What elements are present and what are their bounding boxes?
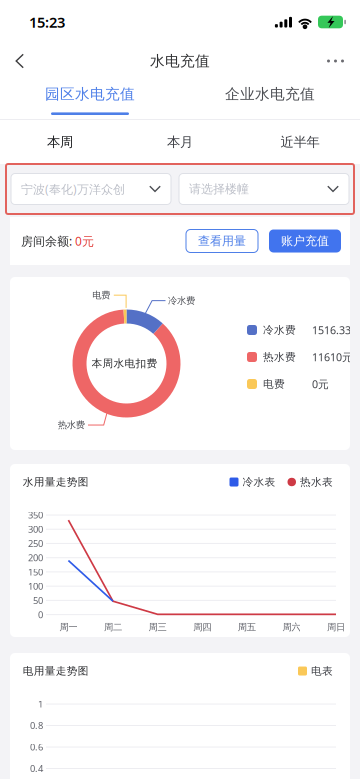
staticText: 账户充值 (281, 234, 329, 248)
staticText: 冷水费 (263, 323, 296, 336)
staticText: 宁波(奉化)万洋众创 (21, 181, 125, 197)
staticText: 50 (33, 594, 43, 607)
button[interactable]: 本月 (120, 120, 240, 164)
staticText: 水电充值 (150, 52, 210, 70)
staticText: 1 (38, 698, 43, 710)
button[interactable]: 查看用量 (186, 229, 258, 252)
staticText: 周四 (193, 621, 211, 633)
button[interactable]: More options (311, 45, 360, 76)
staticText: 热水费 (58, 419, 85, 431)
staticText: 园区水电充值 (45, 85, 135, 103)
staticText: 0元 (312, 377, 329, 391)
staticText: 电表 (311, 664, 333, 677)
staticText: 冷水费 (168, 295, 195, 306)
staticText: 水用量走势图 (23, 475, 89, 488)
staticText: 热水表 (300, 475, 333, 488)
staticText: 本周水电扣费 (91, 357, 157, 370)
staticText: 0 (38, 608, 43, 621)
button[interactable]: 企业水电充值 (180, 78, 360, 119)
button[interactable]: 账户充值 (269, 229, 341, 252)
staticText: 150 (28, 566, 43, 578)
staticText: 周一 (59, 621, 77, 633)
staticText: 周六 (282, 621, 300, 633)
staticText: 电用量走势图 (23, 664, 89, 677)
button[interactable]: Back (0, 44, 40, 77)
button[interactable]: 本周 (0, 120, 120, 164)
button[interactable]: 宁波(奉化)万洋众创 (11, 173, 171, 204)
staticText: 电费 (92, 289, 110, 301)
button[interactable]: 近半年 (240, 120, 360, 164)
button[interactable]: 园区水电充值 (0, 78, 180, 119)
staticText: 15:23 (29, 12, 65, 32)
staticText: 请选择楼幢 (189, 182, 249, 196)
staticText: 查看用量 (198, 234, 246, 248)
staticText: 100 (28, 580, 43, 592)
staticText: 周五 (238, 621, 256, 633)
staticText: 1516.33元 (312, 323, 360, 337)
staticText: 电费 (263, 377, 285, 390)
staticText: 0.6 (30, 741, 43, 753)
staticText: 本周 (47, 134, 73, 150)
staticText: 200 (28, 551, 43, 564)
staticText: 300 (28, 523, 43, 535)
staticText: 350 (28, 509, 43, 521)
staticText: 11610元 (312, 350, 353, 364)
staticText: 0.8 (30, 719, 43, 732)
staticText: 周三 (149, 621, 167, 633)
staticText: 周日 (327, 621, 345, 633)
staticText: 250 (28, 537, 43, 550)
button[interactable]: 请选择楼幢 (179, 173, 349, 204)
staticText: 热水费 (263, 350, 296, 363)
staticText: 近半年 (280, 134, 319, 150)
staticText: 0元 (75, 233, 94, 249)
staticText: 本月 (167, 134, 193, 150)
staticText: 周二 (104, 621, 122, 633)
staticText: 房间余额: (21, 233, 75, 249)
staticText: 冷水表 (242, 475, 275, 488)
staticText: 企业水电充值 (225, 85, 315, 103)
staticText: 0.4 (30, 762, 43, 775)
